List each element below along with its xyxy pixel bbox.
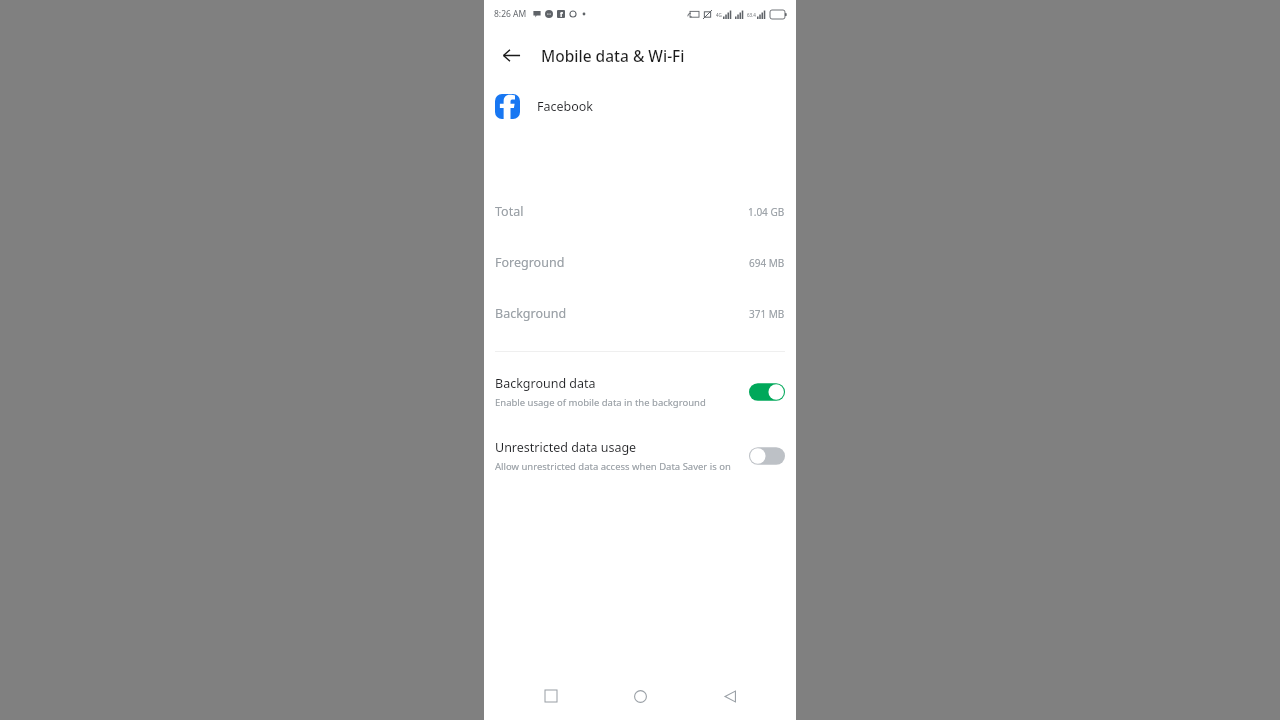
staticText: Enable usage of mobile data in the backg… xyxy=(495,396,706,409)
staticText: Unrestricted data usage xyxy=(495,439,637,456)
staticText: 8:26 AM xyxy=(494,8,527,20)
staticText: 4G xyxy=(716,12,722,18)
staticText: Total xyxy=(495,203,524,220)
staticText: 1.04 GB xyxy=(748,205,785,219)
staticText: Background data xyxy=(495,375,596,392)
button[interactable]: Toggle on xyxy=(749,381,785,403)
staticText: Background xyxy=(495,305,567,322)
button[interactable]: Back xyxy=(707,673,753,719)
button[interactable]: Background xyxy=(484,288,796,339)
button[interactable]: Back xyxy=(490,34,532,76)
staticText: Foreground xyxy=(495,254,565,271)
button[interactable]: Background data xyxy=(484,373,796,411)
button[interactable]: Home xyxy=(617,673,663,719)
staticText: f xyxy=(560,10,563,18)
button[interactable]: Recents xyxy=(528,673,574,719)
button[interactable]: Foreground xyxy=(484,237,796,288)
staticText: Mobile data & Wi-Fi xyxy=(541,45,685,66)
staticText: Allow unrestricted data access when Data… xyxy=(495,460,731,473)
staticText: 63.4 xyxy=(747,12,756,18)
staticText: 371 MB xyxy=(749,307,785,321)
button[interactable]: Facebook xyxy=(484,82,796,130)
button[interactable]: Unrestricted data usage xyxy=(484,437,796,475)
staticText: 694 MB xyxy=(749,256,785,270)
button[interactable]: Toggle off xyxy=(749,445,785,467)
staticText: Facebook xyxy=(537,98,594,115)
button[interactable]: Total xyxy=(484,186,796,237)
